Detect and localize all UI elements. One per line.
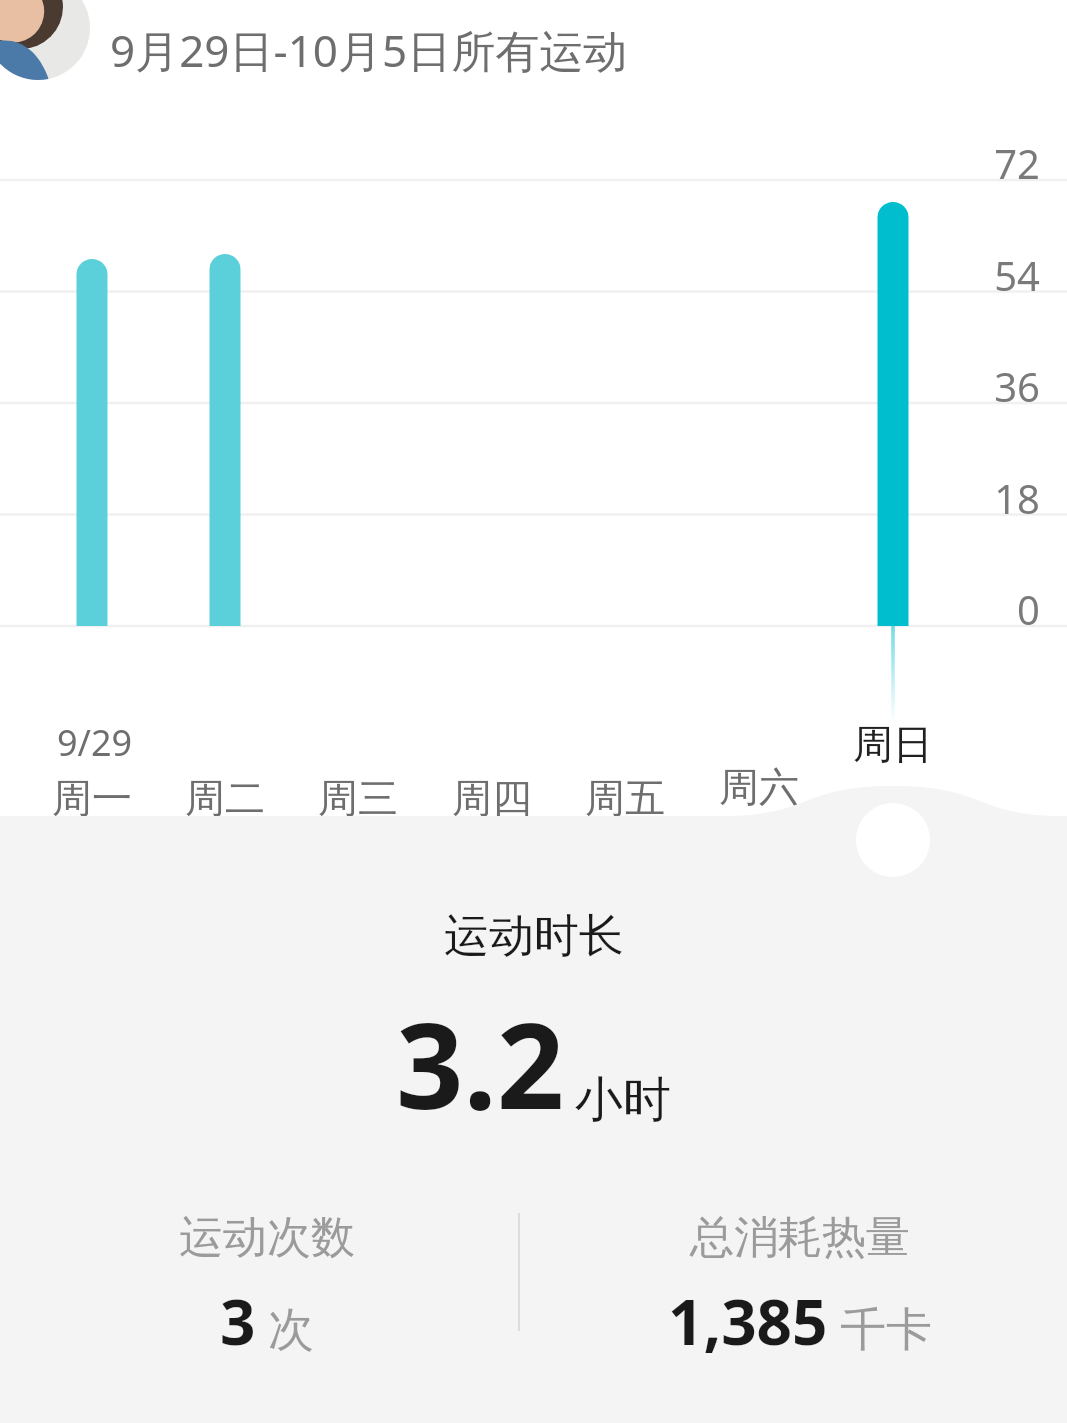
button[interactable]: 周五: [565, 770, 685, 826]
staticText: 36: [930, 359, 1040, 413]
button[interactable]: 周日: [833, 716, 953, 772]
button[interactable]: 周六: [699, 759, 819, 815]
staticText: 0: [930, 582, 1040, 636]
staticText: 周四: [452, 773, 532, 823]
button[interactable]: 周四: [432, 770, 552, 826]
staticText: 千卡: [840, 1301, 932, 1359]
staticText: 运动时长: [444, 908, 624, 965]
staticText: 次: [268, 1301, 314, 1359]
staticText: 1,385: [668, 1279, 828, 1363]
staticText: 运动次数: [179, 1210, 355, 1265]
staticText: 54: [930, 248, 1040, 302]
button[interactable]: 周二: [165, 770, 285, 826]
staticText: 72: [930, 136, 1040, 190]
staticText: 小时: [575, 1070, 671, 1130]
button[interactable]: 周一: [32, 770, 152, 826]
staticText: 9/29: [57, 718, 133, 767]
staticText: 总消耗热量: [690, 1210, 910, 1265]
staticText: 周五: [585, 773, 665, 823]
staticText: 18: [930, 471, 1040, 525]
staticText: 周三: [318, 773, 398, 823]
button[interactable]: 运动次数: [0, 1210, 533, 1363]
staticText: 9月29日-10月5日所有运动: [110, 20, 628, 80]
button[interactable]: 周三: [298, 770, 418, 826]
staticText: 3: [220, 1279, 256, 1363]
button[interactable]: 运动时长: [0, 908, 1067, 1144]
staticText: 周二: [185, 773, 265, 823]
staticText: 3.2: [396, 983, 565, 1144]
staticText: 周一: [52, 773, 132, 823]
staticText: 周六: [719, 762, 799, 812]
button[interactable]: Profile avatar: [0, 0, 90, 80]
staticText: 周日: [853, 719, 933, 769]
button[interactable]: 总消耗热量: [533, 1210, 1067, 1363]
